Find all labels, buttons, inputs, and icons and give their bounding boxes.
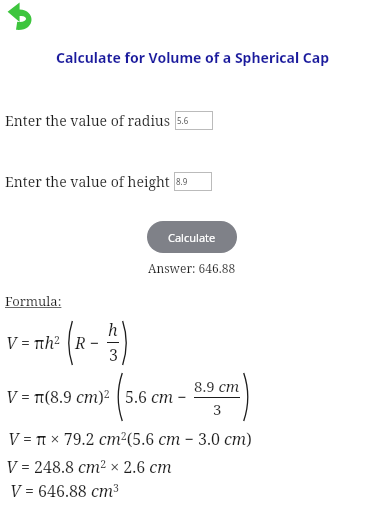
staticText: 5.6 [177,115,189,126]
button[interactable]: Calculate [147,221,237,253]
staticText: Calculate for Volume of a Spherical Cap [56,48,329,67]
button[interactable]: 5.6 [175,111,213,130]
staticText: 3 [213,399,222,419]
staticText: R − [75,332,104,354]
staticText: 3 [109,344,118,366]
staticText: 8.9 cm [194,376,240,396]
staticText: V = π × 79.2 cm2(5.6 cm − 3.0 cm) [8,428,252,450]
staticText: Formula: [5,292,62,310]
staticText: 5.6 cm − [125,386,191,408]
staticText: h [108,319,118,341]
staticText: 8.9 [176,176,188,187]
staticText: Answer: 646.88 [148,260,236,276]
staticText: Calculate [168,230,216,245]
button[interactable]: 8.9 [174,172,212,191]
staticText: V = πh2 [6,332,60,354]
staticText: V = 646.88 cm3 [10,480,119,502]
staticText: Enter the value of radius [5,111,171,130]
button[interactable]: Back [7,1,37,31]
staticText: Enter the value of height [5,172,170,191]
staticText: V = 248.8 cm2 × 2.6 cm [6,456,172,478]
staticText: V = π(8.9 cm)2 [6,386,110,408]
